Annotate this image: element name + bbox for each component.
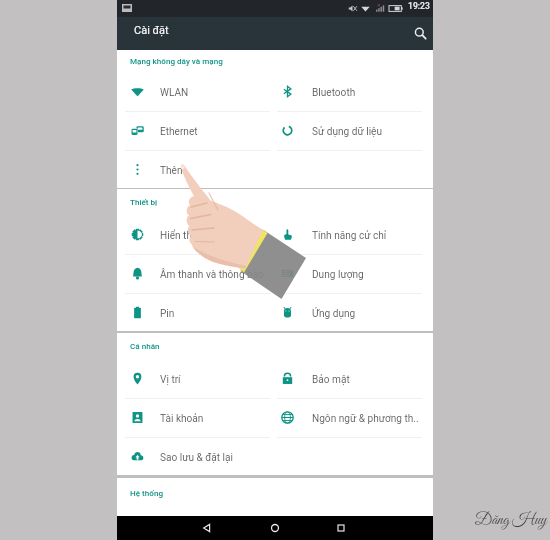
staticText: Dung lượng bbox=[312, 269, 430, 281]
staticText: Cài đặt bbox=[134, 24, 169, 37]
button[interactable]: WLAN bbox=[117, 72, 273, 111]
button[interactable]: Tài khoản bbox=[117, 398, 273, 437]
staticText: Cá nhân bbox=[130, 341, 160, 350]
staticText: Sử dụng dữ liệu bbox=[312, 126, 430, 138]
staticText: Pin bbox=[160, 308, 270, 320]
staticText: Hệ thống bbox=[130, 488, 163, 497]
button[interactable]: Sử dụng dữ liệu bbox=[273, 111, 433, 150]
button[interactable]: Pin bbox=[117, 293, 273, 332]
button[interactable]: Search bbox=[407, 20, 433, 46]
staticText: Ethernet bbox=[160, 126, 270, 138]
staticText: Ngôn ngữ & phương th.. bbox=[312, 413, 430, 425]
staticText: Đăng Huy bbox=[475, 510, 547, 530]
button[interactable]: Recents bbox=[335, 522, 347, 534]
button[interactable]: Thêm bbox=[117, 150, 273, 189]
button[interactable]: Tính năng cử chỉ bbox=[273, 215, 433, 254]
staticText: WLAN bbox=[160, 87, 270, 99]
button[interactable]: Bluetooth bbox=[273, 72, 433, 111]
button[interactable]: Hiển thị bbox=[117, 215, 273, 254]
button[interactable]: Ứng dụng bbox=[273, 293, 433, 332]
button[interactable]: Home bbox=[269, 522, 281, 534]
staticText: Thiết bị bbox=[130, 197, 158, 206]
staticText: Bluetooth bbox=[312, 87, 430, 99]
staticText: Hiển thị bbox=[160, 230, 270, 242]
button[interactable]: Bảo mật bbox=[273, 359, 433, 398]
staticText: Thêm bbox=[160, 165, 270, 177]
staticText: Tài khoản bbox=[160, 413, 270, 425]
button[interactable]: Âm thanh và thông báo bbox=[117, 254, 273, 293]
staticText: Vị trí bbox=[160, 374, 270, 386]
button[interactable]: Back bbox=[201, 522, 213, 534]
staticText: Sao lưu & đặt lại bbox=[160, 452, 270, 464]
button[interactable]: Ngôn ngữ & phương th.. bbox=[273, 398, 433, 437]
staticText: Bảo mật bbox=[312, 374, 430, 386]
staticText: Ứng dụng bbox=[312, 308, 430, 320]
staticText: Mạng không dây và mạng bbox=[130, 56, 223, 65]
button[interactable]: Dung lượng bbox=[273, 254, 433, 293]
button[interactable]: Ethernet bbox=[117, 111, 273, 150]
staticText: 19:23 bbox=[408, 1, 430, 11]
staticText: Âm thanh và thông báo bbox=[160, 269, 270, 281]
button[interactable]: Sao lưu & đặt lại bbox=[117, 437, 273, 476]
button[interactable]: Vị trí bbox=[117, 359, 273, 398]
staticText: Tính năng cử chỉ bbox=[312, 230, 430, 242]
